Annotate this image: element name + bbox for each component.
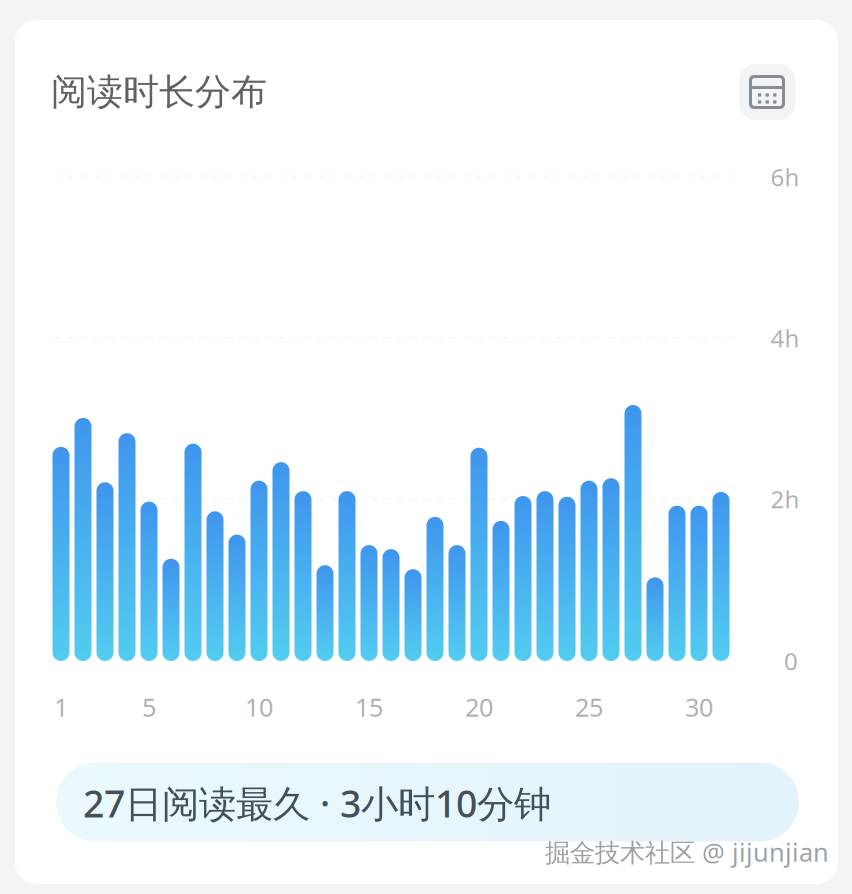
staticText: 10 xyxy=(245,690,273,724)
staticText: 1 xyxy=(54,690,68,724)
staticText: 0 xyxy=(784,645,798,677)
button[interactable]: Choose month xyxy=(739,64,795,120)
staticText: 5 xyxy=(142,690,156,724)
staticText: 15 xyxy=(355,690,383,724)
staticText: 27日阅读最久 · 3小时10分钟 xyxy=(83,778,551,828)
staticText: 6h xyxy=(770,161,799,193)
staticText: 30 xyxy=(685,690,713,724)
staticText: 4h xyxy=(770,322,799,354)
staticText: 掘金技术社区 @ jijunjian xyxy=(545,835,829,869)
staticText: 25 xyxy=(575,690,603,724)
staticText: 阅读时长分布 xyxy=(51,70,267,114)
staticText: 2h xyxy=(770,483,799,515)
staticText: 20 xyxy=(465,690,493,724)
